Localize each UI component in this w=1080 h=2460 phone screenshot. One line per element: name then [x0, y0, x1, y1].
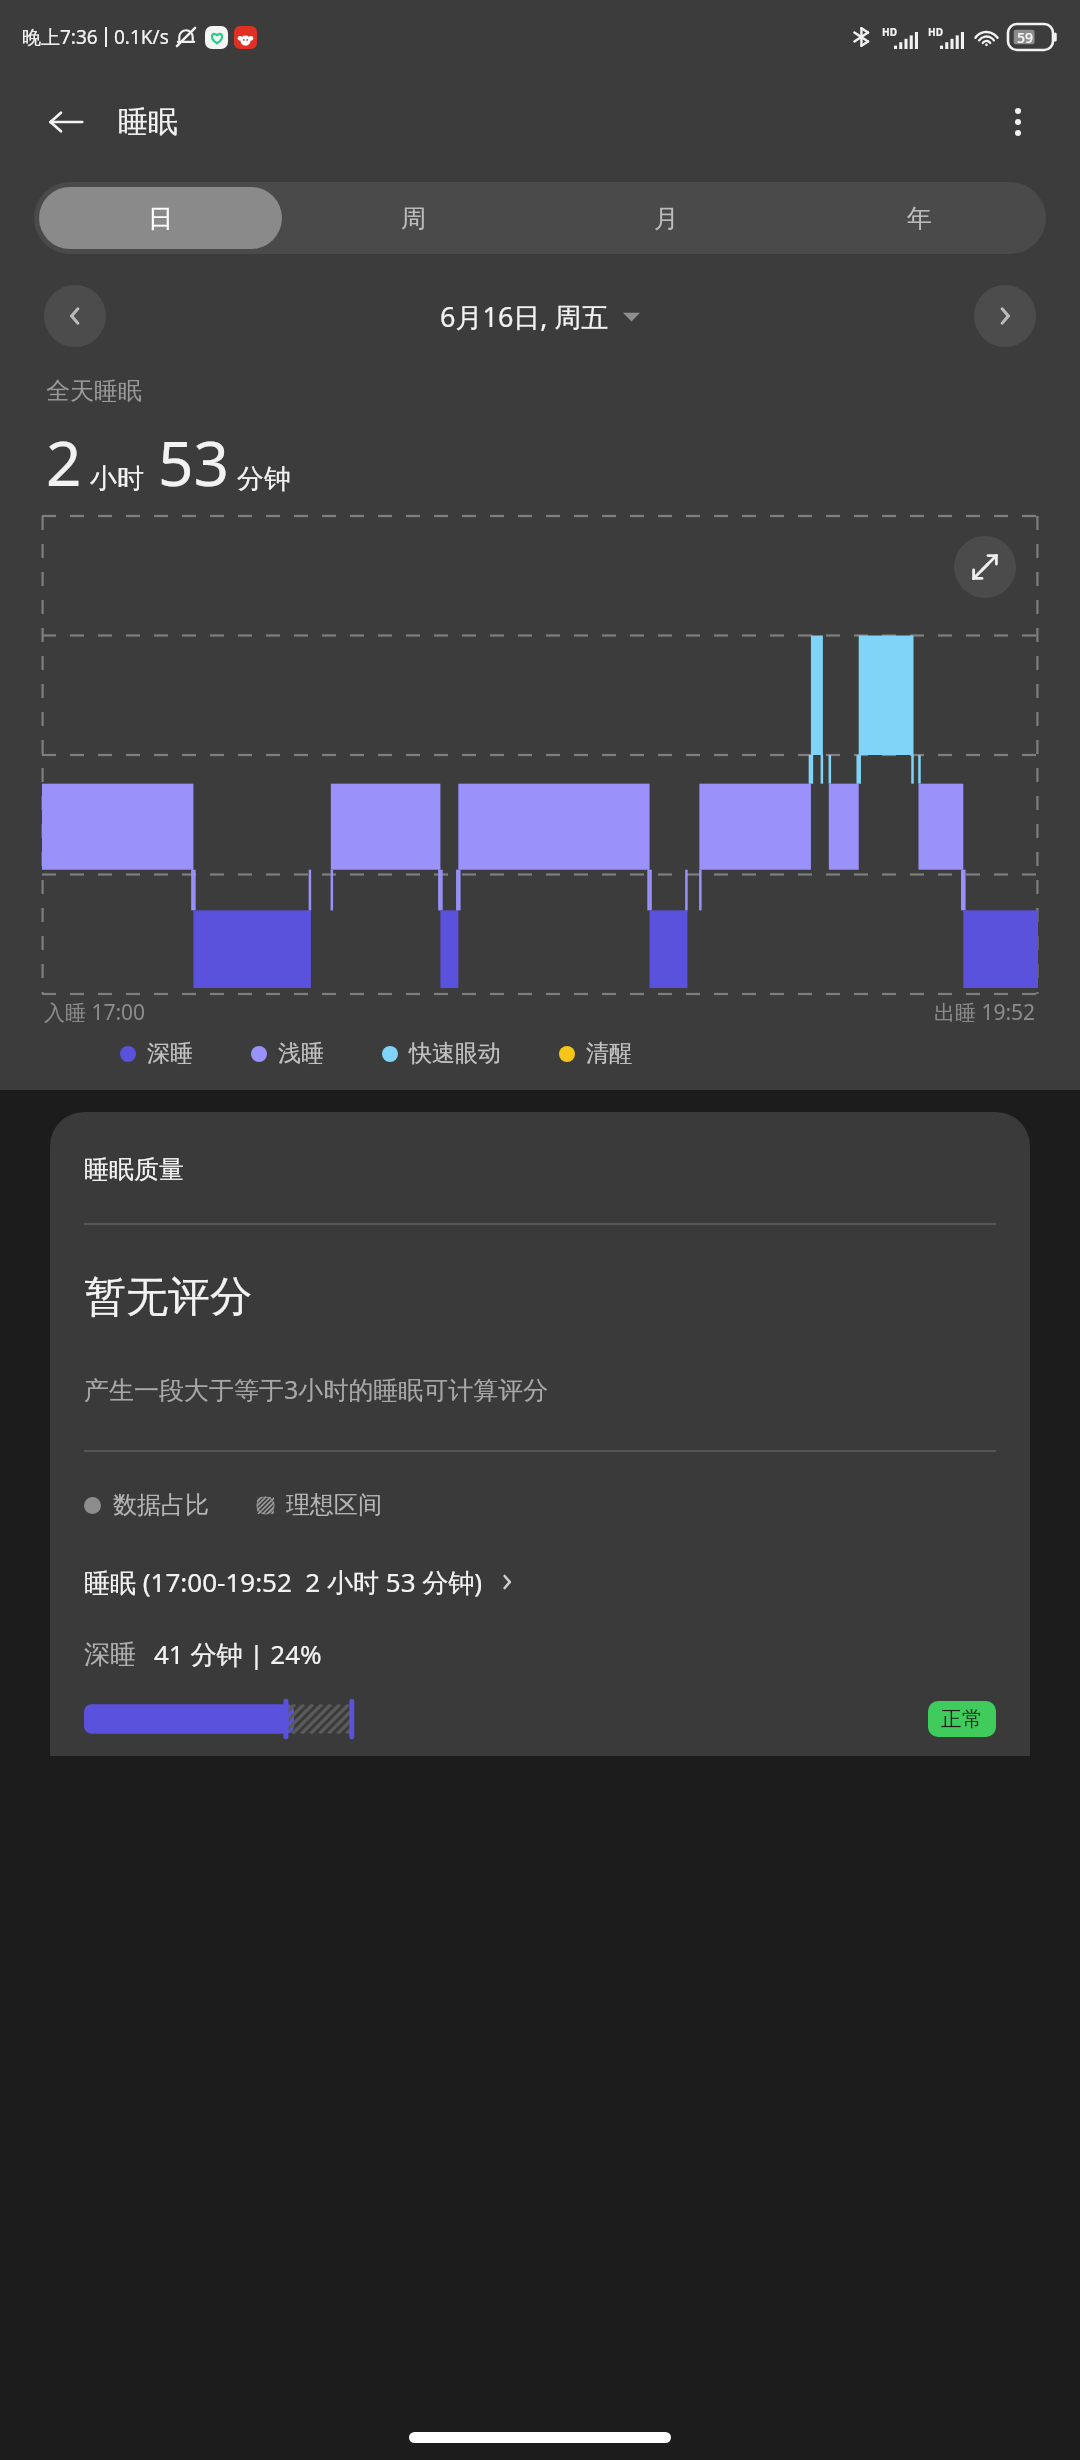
staticText: 年 — [907, 203, 932, 234]
staticText: 2 — [46, 420, 82, 504]
button[interactable]: Next day — [974, 285, 1036, 347]
staticText: 正常 — [941, 1706, 983, 1732]
button[interactable]: 月 — [545, 187, 788, 249]
staticText: 月 — [654, 203, 679, 234]
button[interactable]: More options — [992, 96, 1044, 148]
staticText: 深睡 — [84, 1638, 136, 1671]
button[interactable]: 周 — [292, 187, 535, 249]
staticText: 分钟 — [237, 462, 291, 496]
button[interactable]: Back — [40, 96, 92, 148]
staticText: 浅睡 — [278, 1039, 324, 1068]
button[interactable]: 睡眠质量 — [50, 1112, 1030, 1756]
button[interactable]: 睡眠 (17:00-19:52 2 小时 53 分钟) — [84, 1564, 996, 1600]
staticText: 入睡 17:00 — [44, 998, 146, 1027]
button[interactable]: Expand chart — [954, 536, 1016, 598]
staticText: 6月16日, 周五 — [440, 298, 609, 335]
button[interactable]: 年 — [798, 187, 1041, 249]
staticText: 理想区间 — [286, 1490, 382, 1520]
staticText: 全天睡眠 — [46, 376, 142, 406]
staticText: 深睡 — [147, 1039, 193, 1068]
staticText: 59 — [1017, 28, 1034, 47]
staticText: 0.1K/s — [114, 24, 169, 50]
staticText: HD — [882, 25, 897, 39]
staticText: 周 — [401, 203, 426, 234]
staticText: 41 分钟 | 24% — [154, 1636, 322, 1672]
staticText: 出睡 19:52 — [934, 998, 1036, 1027]
staticText: 睡眠 (17:00-19:52 2 小时 53 分钟) — [84, 1564, 483, 1600]
staticText: 睡眠 — [118, 103, 178, 141]
button[interactable]: 日 — [39, 187, 282, 249]
staticText: 快速眼动 — [409, 1039, 501, 1068]
staticText: 产生一段大于等于3小时的睡眠可计算评分 — [84, 1372, 549, 1406]
staticText: 日 — [148, 203, 173, 234]
staticText: 睡眠质量 — [84, 1154, 184, 1185]
staticText: 暂无评分 — [84, 1271, 252, 1324]
staticText: 清醒 — [586, 1039, 632, 1068]
staticText: 数据占比 — [113, 1490, 209, 1520]
staticText: 小时 — [90, 462, 144, 496]
button[interactable]: 6月16日, 周五 — [440, 298, 640, 335]
staticText: 53 — [158, 420, 229, 504]
staticText: 晚上7:36 — [22, 24, 98, 50]
staticText: HD — [928, 25, 943, 39]
button[interactable]: Previous day — [44, 285, 106, 347]
